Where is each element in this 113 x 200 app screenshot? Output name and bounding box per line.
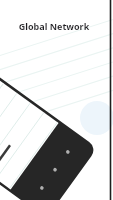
staticText: Global Network	[0, 20, 108, 32]
